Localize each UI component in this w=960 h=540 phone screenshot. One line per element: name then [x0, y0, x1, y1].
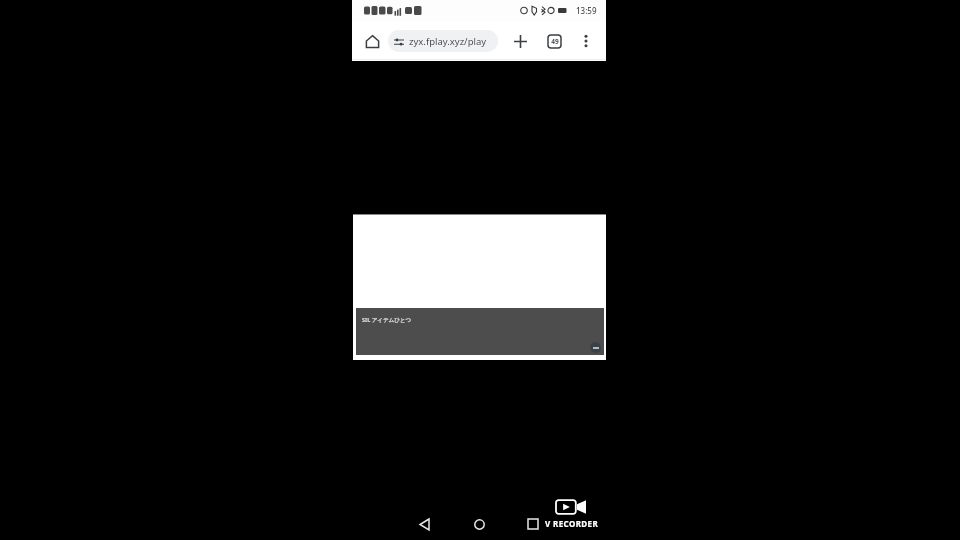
button[interactable]: SIL アイテムひとつ	[356, 308, 604, 355]
button[interactable]: Collapse	[590, 342, 601, 353]
staticText: zyx.fplay.xyz/play	[409, 35, 487, 48]
button[interactable]: Switch tabs, 49 open	[541, 28, 567, 54]
button[interactable]: zyx.fplay.xyz/play	[388, 30, 498, 52]
button[interactable]: Recent apps	[521, 512, 545, 536]
staticText: 49	[551, 37, 559, 46]
button[interactable]: More options	[573, 28, 599, 54]
button[interactable]: Home	[361, 30, 383, 52]
staticText: SIL アイテムひとつ	[362, 316, 412, 324]
button[interactable]: Home	[467, 512, 491, 536]
button[interactable]: New tab	[507, 28, 533, 54]
staticText: 13:59	[576, 5, 597, 16]
staticText: V RECORDER	[545, 518, 599, 529]
other: V Recorder	[556, 498, 586, 516]
button[interactable]: Back	[412, 512, 436, 536]
